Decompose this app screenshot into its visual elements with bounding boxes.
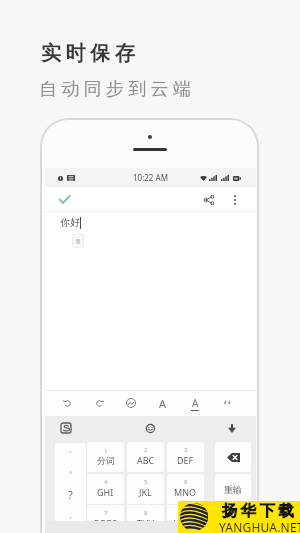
staticText: 重输 — [224, 484, 242, 495]
staticText: 9 — [184, 509, 188, 517]
button[interactable]: Share — [200, 191, 218, 209]
staticText: GHI — [97, 486, 114, 498]
button[interactable]: 5 — [127, 474, 164, 504]
button[interactable]: Redo — [88, 392, 110, 414]
button[interactable]: 9 — [167, 505, 204, 521]
staticText: PQRS — [94, 517, 118, 521]
button[interactable]: 4 — [87, 474, 124, 504]
button[interactable]: Space — [215, 505, 251, 521]
button[interactable]: 8 — [127, 505, 164, 521]
staticText: 8 — [144, 509, 148, 517]
staticText: ° — [69, 470, 72, 480]
staticText: A — [159, 396, 167, 411]
staticText: YANGHUA.NET — [219, 519, 300, 533]
staticText: , — [70, 511, 72, 521]
staticText: 2 — [144, 446, 148, 454]
staticText: A — [192, 396, 199, 410]
button[interactable]: 3 — [167, 442, 204, 472]
button[interactable]: , — [55, 505, 86, 521]
button[interactable]: 6 — [167, 474, 204, 504]
button[interactable]: Quote — [216, 392, 238, 414]
button[interactable]: Hide keyboard — [224, 420, 240, 436]
staticText: DEF — [177, 454, 194, 466]
button[interactable]: 重输 — [215, 474, 251, 504]
staticText: ' — [70, 449, 72, 459]
button[interactable]: More options — [227, 192, 243, 208]
staticText: JKL — [139, 486, 152, 498]
button[interactable]: 1 — [87, 442, 124, 472]
button[interactable]: Insert image — [120, 392, 142, 414]
button[interactable]: ? — [55, 484, 86, 505]
staticText: 5 — [144, 478, 148, 486]
staticText: 7 — [104, 509, 108, 517]
staticText: MNO — [174, 486, 197, 498]
staticText: 实时保存 — [41, 41, 140, 66]
staticText: 扬华下载 — [222, 501, 298, 521]
staticText: 6 — [184, 478, 188, 486]
staticText: 你好 — [60, 216, 80, 229]
staticText: TUV — [137, 517, 154, 521]
staticText: 10:22 AM — [133, 172, 168, 183]
button[interactable]: Text style — [152, 392, 174, 414]
button[interactable]: ° — [55, 464, 86, 485]
button[interactable]: Text colour — [184, 392, 206, 414]
button[interactable]: Input method — [58, 420, 74, 436]
staticText: 分词 — [97, 455, 115, 466]
button[interactable]: 2 — [127, 442, 164, 472]
staticText: ABC — [137, 454, 155, 466]
staticText: ? — [68, 487, 73, 502]
staticText: 3 — [184, 446, 188, 454]
button[interactable]: Selection handle — [72, 234, 84, 248]
button[interactable]: Delete — [215, 442, 251, 472]
staticText: 1 — [104, 447, 108, 455]
staticText: 自动同步到云端 — [39, 78, 196, 101]
button[interactable]: 7 — [87, 505, 124, 521]
staticText: WXYZ — [174, 517, 198, 521]
button[interactable]: Undo — [56, 392, 78, 414]
button[interactable]: Emoji — [142, 420, 158, 436]
button[interactable]: Done — [55, 190, 74, 209]
staticText: 4 — [104, 478, 108, 486]
